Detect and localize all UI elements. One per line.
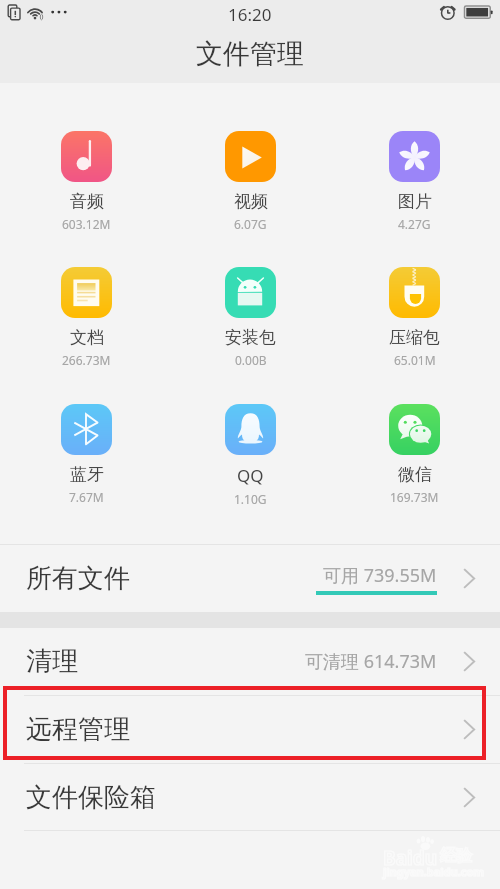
staticText: 清理 (26, 645, 78, 678)
button[interactable]: 微信 (389, 404, 440, 505)
button[interactable]: QQ (225, 404, 276, 507)
staticText: 可清理 614.73M (305, 649, 437, 674)
button[interactable]: 所有文件 (0, 545, 500, 612)
staticText: 文档 (70, 327, 104, 348)
staticText: 图片 (398, 191, 432, 212)
button[interactable]: 清理 (0, 628, 500, 695)
staticText: QQ (237, 464, 264, 487)
staticText: 65.01M (394, 352, 436, 368)
button[interactable]: 远程管理 (0, 696, 500, 763)
button[interactable]: 压缩包 (389, 267, 440, 368)
button[interactable]: 安装包 (225, 267, 276, 368)
staticText: 可用 739.55M (323, 563, 437, 588)
staticText: 视频 (234, 191, 268, 212)
staticText: 所有文件 (26, 562, 130, 595)
staticText: 16:20 (228, 3, 272, 26)
staticText: 安装包 (225, 327, 276, 348)
button[interactable]: 蓝牙 (61, 404, 112, 505)
button[interactable]: 文档 (61, 267, 112, 368)
button[interactable]: 视频 (225, 131, 276, 232)
staticText: 压缩包 (389, 327, 440, 348)
button[interactable]: 文件保险箱 (0, 764, 500, 831)
staticText: 文件保险箱 (26, 781, 156, 814)
staticText: 603.12M (62, 216, 111, 232)
button[interactable]: 音频 (61, 131, 112, 232)
staticText: 文件管理 (196, 37, 304, 71)
button[interactable]: 图片 (389, 131, 440, 232)
staticText: 4.27G (398, 216, 431, 232)
staticText: 6.07G (234, 216, 267, 232)
staticText: 0.00B (235, 352, 267, 368)
staticText: 7.67M (69, 489, 104, 505)
staticText: 266.73M (62, 352, 111, 368)
staticText: 169.73M (390, 489, 439, 505)
staticText: 远程管理 (26, 713, 130, 746)
staticText: 微信 (398, 464, 432, 485)
staticText: 蓝牙 (70, 464, 104, 485)
staticText: 1.10G (234, 491, 267, 507)
staticText: 音频 (70, 191, 104, 212)
